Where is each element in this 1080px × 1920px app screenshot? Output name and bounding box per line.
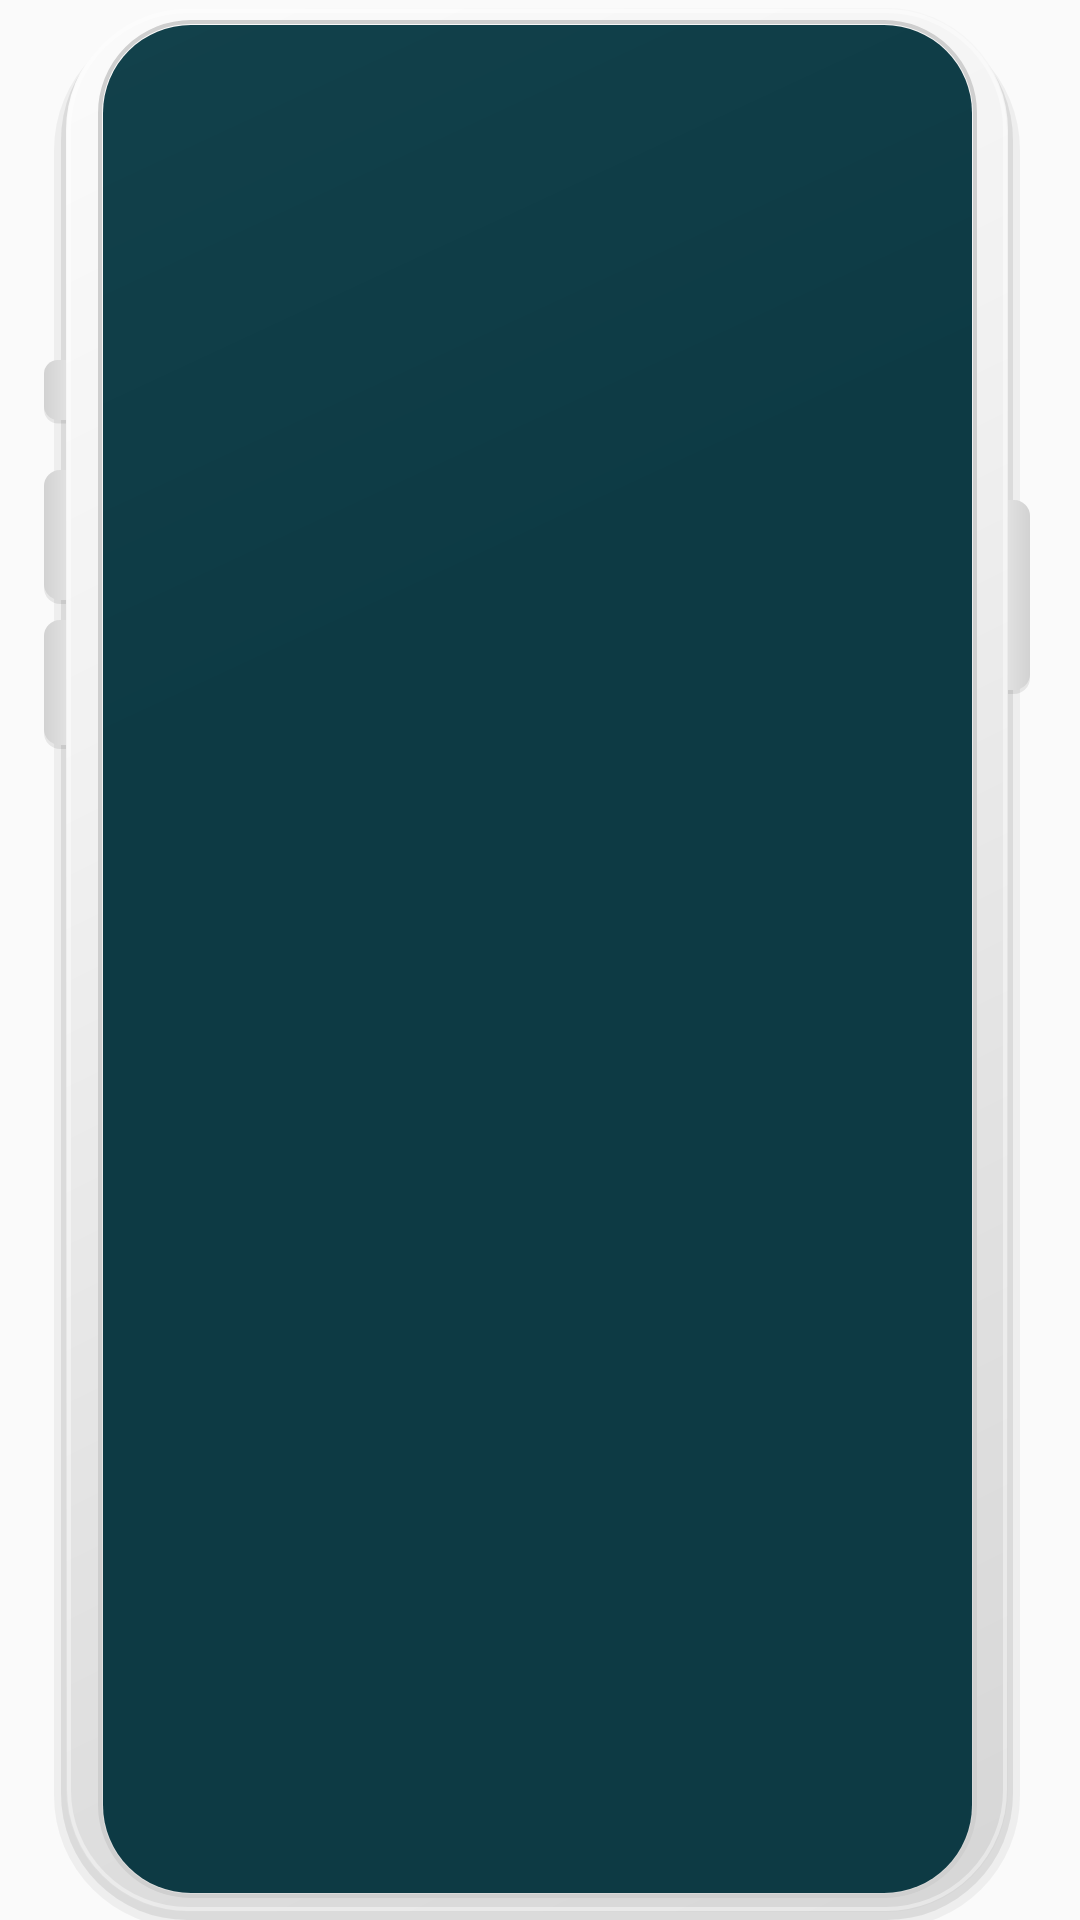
- other: Phone device showing a blank dark teal s…: [0, 0, 1080, 1920]
